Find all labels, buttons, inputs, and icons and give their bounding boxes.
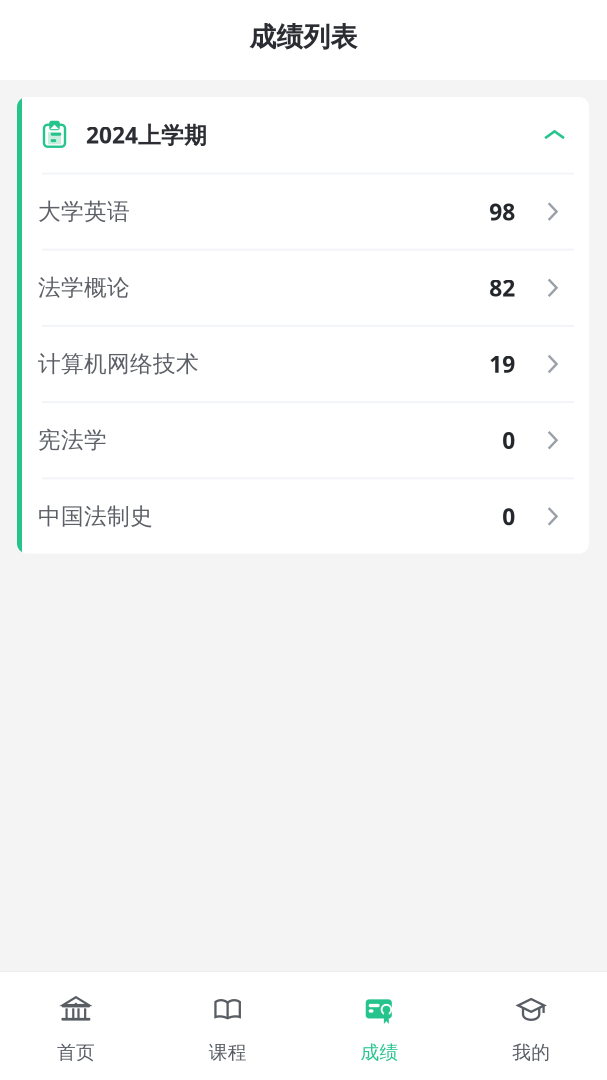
button[interactable]: 2024上学期 [22, 97, 589, 172]
staticText: 宪法学 [38, 426, 107, 454]
button[interactable]: 我的 [455, 972, 607, 1080]
button[interactable]: 成绩 [303, 972, 455, 1080]
staticText: 0 [502, 425, 515, 455]
staticText: 2024上学期 [86, 120, 207, 150]
staticText: 首页 [57, 1041, 95, 1064]
staticText: 19 [489, 349, 515, 379]
staticText: 大学英语 [38, 198, 130, 225]
button[interactable]: 中国法制史 [22, 477, 589, 553]
staticText: 成绩列表 [249, 21, 357, 53]
button[interactable]: 宪法学 [22, 401, 589, 477]
staticText: 0 [502, 501, 515, 531]
button[interactable]: 法学概论 [22, 249, 589, 325]
staticText: 98 [489, 196, 515, 227]
staticText: 中国法制史 [38, 502, 153, 530]
staticText: 课程 [209, 1041, 247, 1064]
staticText: 82 [489, 273, 515, 303]
staticText: 法学概论 [38, 274, 130, 302]
button[interactable]: 课程 [152, 972, 304, 1080]
staticText: 成绩 [360, 1041, 398, 1064]
button[interactable]: 计算机网络技术 [22, 325, 589, 401]
button[interactable]: 首页 [0, 972, 152, 1080]
staticText: 我的 [512, 1041, 550, 1064]
staticText: 计算机网络技术 [38, 350, 199, 378]
button[interactable]: 大学英语 [22, 172, 589, 249]
